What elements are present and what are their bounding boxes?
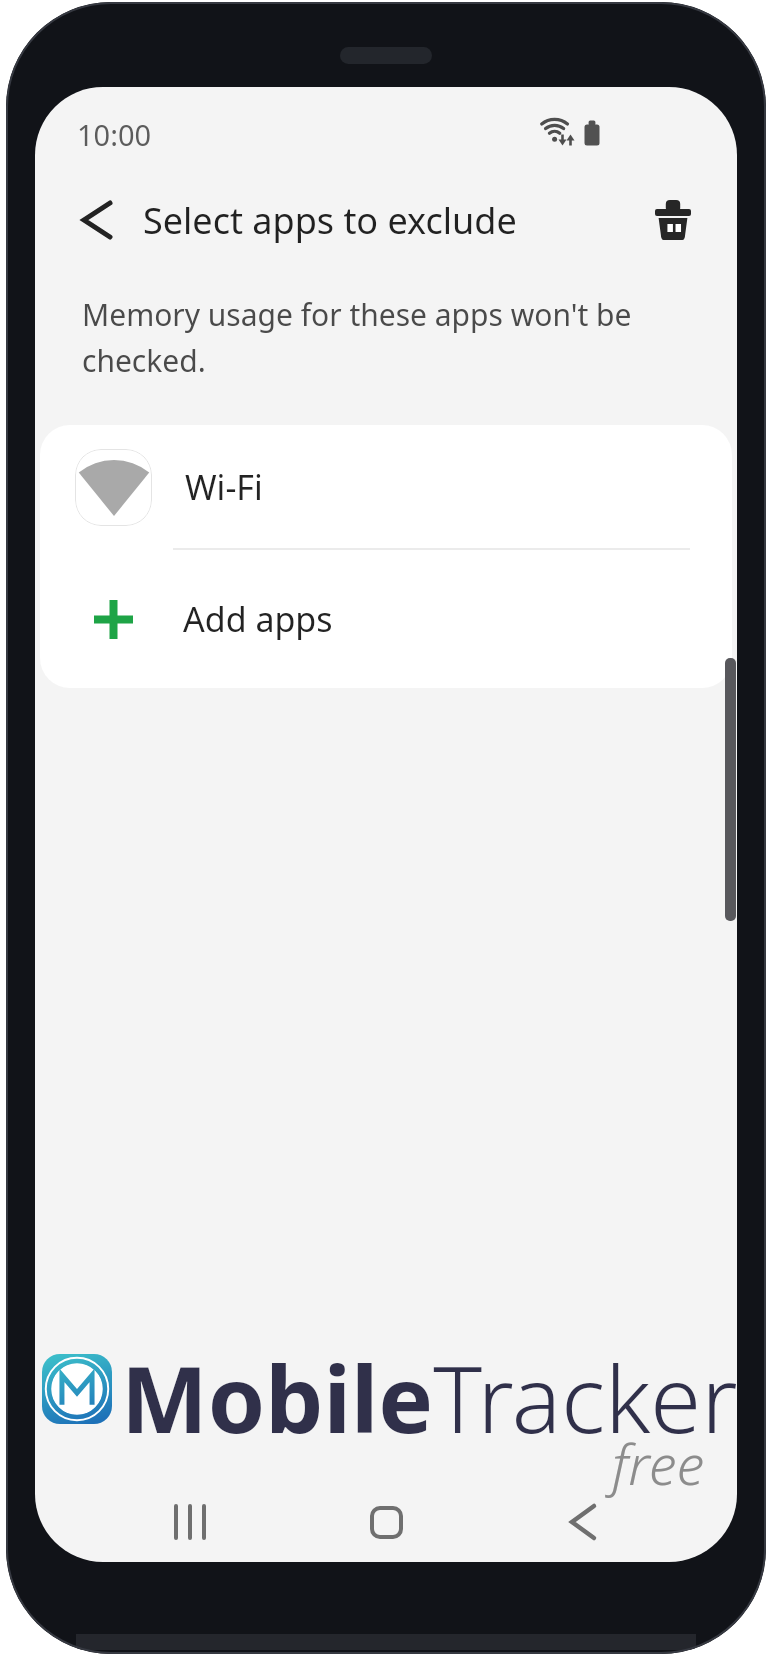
staticText: Select apps to exclude xyxy=(143,196,517,245)
staticText: free xyxy=(612,1425,705,1501)
button[interactable] xyxy=(548,1492,618,1552)
staticText: Wi-Fi xyxy=(185,464,263,510)
button[interactable]: Add apps xyxy=(40,550,732,688)
staticText: MobileTracker xyxy=(121,1335,737,1460)
button[interactable] xyxy=(351,1492,421,1552)
button[interactable] xyxy=(645,192,701,248)
staticText: Add apps xyxy=(183,596,333,642)
staticText: 10:00 xyxy=(77,115,152,154)
button[interactable] xyxy=(155,1492,225,1552)
button[interactable]: Wi-Fi xyxy=(40,425,732,549)
staticText: Memory usage for these apps won't be che… xyxy=(82,294,632,381)
button[interactable] xyxy=(69,192,125,248)
